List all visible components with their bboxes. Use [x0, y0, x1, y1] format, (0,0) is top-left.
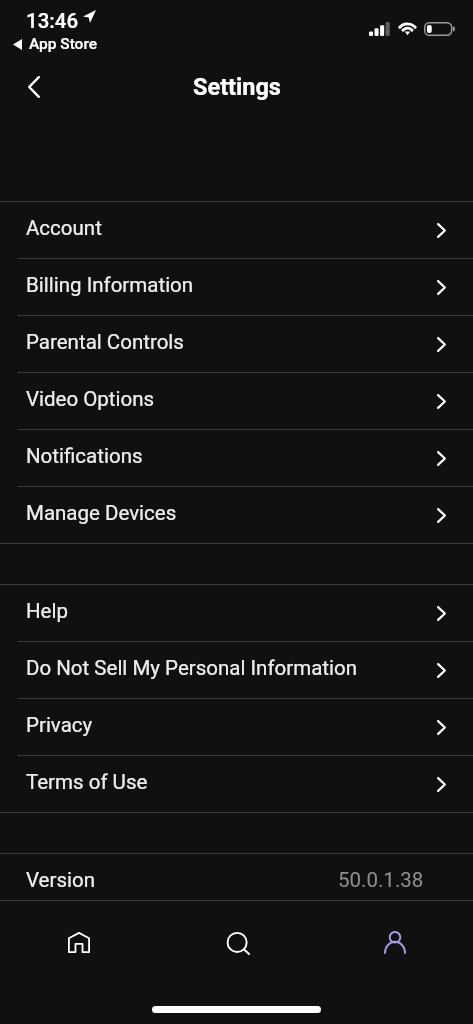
button[interactable]: Profile	[315, 901, 473, 991]
button[interactable]: Account	[0, 202, 473, 259]
staticText: Terms of Use	[26, 770, 148, 794]
staticText: Billing Information	[26, 273, 194, 297]
button[interactable]: Terms of Use	[0, 756, 473, 813]
staticText: Help	[26, 599, 68, 623]
staticText: Privacy	[26, 713, 93, 737]
staticText: Do Not Sell My Personal Information	[26, 656, 358, 680]
button[interactable]: Privacy	[0, 699, 473, 756]
staticText: Version	[26, 868, 96, 892]
staticText: Notifications	[26, 444, 143, 468]
button[interactable]: Do Not Sell My Personal Information	[0, 642, 473, 699]
button[interactable]: Manage Devices	[0, 487, 473, 544]
staticText: Settings	[193, 73, 281, 101]
staticText: 50.0.1.38	[338, 868, 424, 892]
button[interactable]: Back	[14, 67, 54, 107]
staticText: Manage Devices	[26, 501, 177, 525]
staticText: Parental Controls	[26, 330, 184, 354]
button[interactable]: Billing Information	[0, 259, 473, 316]
staticText: App Store	[29, 35, 98, 53]
staticText: 13:46	[26, 9, 79, 33]
button[interactable]: Notifications	[0, 430, 473, 487]
button[interactable]: Video Options	[0, 373, 473, 430]
staticText: Account	[26, 216, 102, 240]
staticText: Video Options	[26, 387, 155, 411]
button[interactable]: Help	[0, 585, 473, 642]
button[interactable]: Home	[0, 901, 157, 991]
button[interactable]: Search	[157, 901, 315, 991]
button[interactable]: Parental Controls	[0, 316, 473, 373]
